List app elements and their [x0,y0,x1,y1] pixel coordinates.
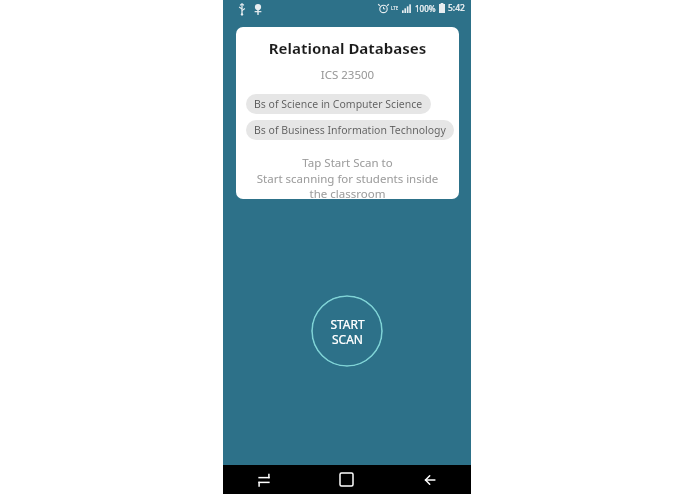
staticText: Bs of Science in Computer Science [254,97,423,111]
staticText: Relational Databases [236,38,459,58]
button[interactable]: Recents [223,465,305,494]
button[interactable]: Back [388,465,471,494]
button[interactable]: Bs of Science in Computer Science [246,94,431,114]
staticText: ICS 23500 [236,67,459,83]
staticText: Tap Start Scan to Start scanning for stu… [236,155,459,199]
button[interactable]: Bs of Business Information Technology [246,120,454,140]
button[interactable]: Relational Databases [236,27,459,199]
staticText: START SCAN [330,316,365,347]
staticText: 5:42 [448,2,465,14]
staticText: 100% [415,3,436,14]
staticText: LTE [391,5,399,11]
button[interactable]: Start Scan [311,295,383,367]
staticText: Bs of Business Information Technology [254,123,446,137]
button[interactable]: Home [305,465,388,494]
